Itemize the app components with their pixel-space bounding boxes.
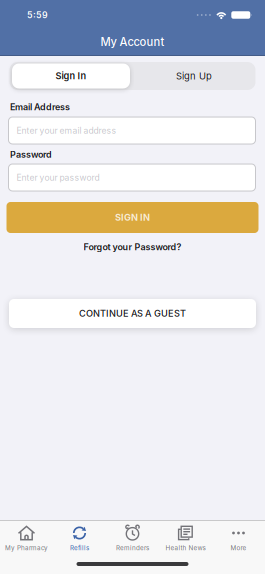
staticText: Enter your email address <box>16 125 116 136</box>
button[interactable]: Refills <box>53 522 106 555</box>
staticText: Password <box>10 149 52 160</box>
textField[interactable]: Enter your password <box>8 164 255 191</box>
staticText: My Account <box>100 35 164 49</box>
button[interactable]: Sign Up <box>132 62 255 90</box>
button[interactable]: CONTINUE AS A GUEST <box>9 299 256 328</box>
staticText: Refills <box>70 544 89 552</box>
button[interactable]: Sign In <box>9 62 132 90</box>
staticText: Reminders <box>116 544 149 552</box>
staticText: Health News <box>165 544 205 552</box>
staticText: My Pharmacy <box>5 544 48 552</box>
staticText: Enter your password <box>16 172 99 183</box>
textField[interactable]: Enter your email address <box>8 117 255 144</box>
staticText: 5:59 <box>27 10 48 20</box>
button[interactable]: My Pharmacy <box>0 522 53 555</box>
staticText: CONTINUE AS A GUEST <box>79 308 186 319</box>
staticText: Sign Up <box>176 70 212 82</box>
button[interactable]: More <box>212 522 265 555</box>
staticText: Forgot your Password? <box>83 242 181 252</box>
staticText: Sign In <box>55 70 86 81</box>
button[interactable]: Reminders <box>106 522 159 555</box>
button[interactable]: Health News <box>159 522 212 555</box>
button[interactable]: SIGN IN <box>6 202 258 233</box>
staticText: More <box>230 544 246 552</box>
staticText: Email Address <box>10 102 70 112</box>
button[interactable]: Forgot your Password? <box>83 242 181 252</box>
staticText: SIGN IN <box>115 212 150 223</box>
